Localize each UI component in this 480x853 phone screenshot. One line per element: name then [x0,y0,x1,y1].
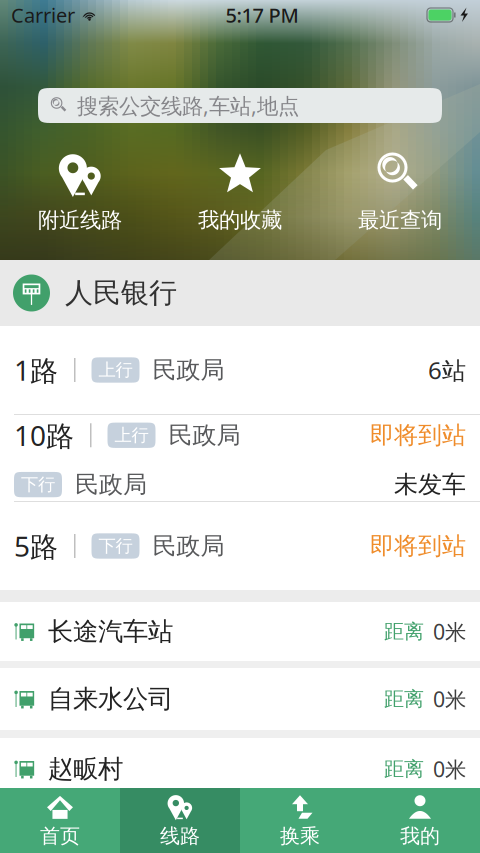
staticText: 0米 [433,685,466,713]
staticText: 上行 [98,359,132,381]
button[interactable]: 5路 [0,502,480,590]
button[interactable]: 我的收藏 [160,150,320,233]
staticText: 自来水公司 [48,683,173,714]
staticText: 1路 [14,351,58,389]
button[interactable]: 换乘 [240,788,360,853]
staticText: 即将到站 [370,420,466,450]
staticText: 民政局 [75,470,147,499]
staticText: 下行 [21,474,55,495]
staticText: 民政局 [152,531,224,561]
staticText: 0米 [433,617,466,646]
button[interactable]: 首页 [0,788,120,853]
staticText: 未发车 [394,470,466,499]
staticText: 最近查询 [358,207,442,233]
button[interactable]: 最近查询 [320,150,480,233]
button[interactable]: 线路 [120,788,240,853]
staticText: 人民银行 [65,276,177,310]
staticText: 我的 [400,824,440,848]
staticText: 距离 [384,687,424,711]
button[interactable]: 自来水公司 [0,668,480,730]
staticText: 5路 [14,527,58,565]
staticText: 赵畈村 [48,753,123,784]
button[interactable]: 附近线路 [0,150,160,233]
staticText: 我的收藏 [198,207,282,233]
staticText: 距离 [384,757,424,781]
button[interactable]: 10路 [0,415,480,501]
staticText: 0米 [433,755,466,783]
staticText: 上行 [114,425,148,446]
staticText: 6站 [428,354,466,386]
staticText: Carrier [11,2,75,28]
button[interactable]: 赵畈村 [0,738,480,800]
staticText: 换乘 [280,824,320,848]
staticText: 民政局 [168,420,240,450]
button[interactable]: 我的 [360,788,480,853]
staticText: 附近线路 [38,207,122,233]
staticText: 民政局 [152,355,224,385]
staticText: 长途汽车站 [48,616,173,647]
staticText: 即将到站 [370,531,466,561]
staticText: 搜索公交线路,车站,地点 [77,91,299,120]
staticText: 下行 [98,535,132,557]
staticText: 5:17 PM [225,2,298,28]
button[interactable]: 长途汽车站 [0,602,480,661]
button[interactable]: 1路 [0,326,480,414]
staticText: 首页 [40,824,80,848]
staticText: 距离 [384,619,424,644]
staticText: 10路 [14,417,74,454]
staticText: 线路 [160,824,200,848]
